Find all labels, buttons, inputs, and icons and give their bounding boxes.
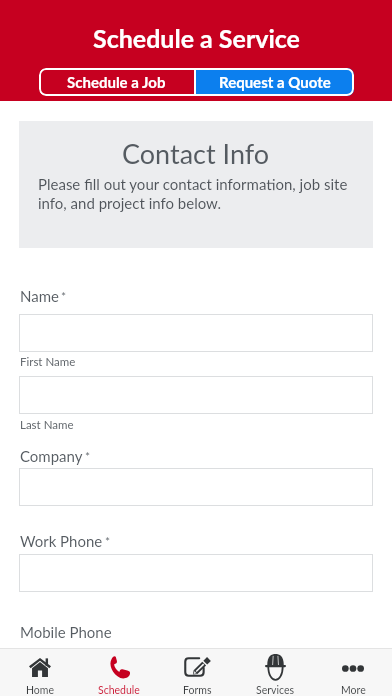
button[interactable]: Schedule a Job <box>39 68 194 96</box>
staticText: * <box>85 449 91 463</box>
button[interactable]: Forms <box>158 649 236 696</box>
button[interactable] <box>19 468 373 506</box>
staticText: Last Name <box>20 418 74 432</box>
other: Services <box>265 654 286 679</box>
staticText: Schedule a Service <box>93 23 300 53</box>
button[interactable]: Home <box>0 649 79 696</box>
staticText: * <box>105 534 111 548</box>
staticText: Forms <box>183 684 212 696</box>
button[interactable] <box>19 554 373 592</box>
button[interactable] <box>19 376 373 414</box>
staticText: Please fill out your contact information… <box>38 175 358 212</box>
staticText: First Name <box>20 355 76 369</box>
other: Schedule <box>108 657 130 678</box>
staticText: Work Phone <box>20 532 103 550</box>
button[interactable]: Schedule <box>79 649 158 696</box>
other: More <box>342 658 364 679</box>
staticText: Mobile Phone <box>20 623 112 641</box>
staticText: Name <box>20 287 59 305</box>
staticText: Company <box>20 447 83 465</box>
button[interactable]: More <box>314 649 392 696</box>
other: Forms <box>184 657 210 677</box>
button[interactable] <box>19 314 373 352</box>
staticText: Services <box>256 684 294 696</box>
button[interactable]: Services <box>236 649 314 696</box>
staticText: * <box>61 289 67 303</box>
staticText: Contact Info <box>122 137 270 169</box>
staticText: Home <box>26 684 54 696</box>
staticText: Schedule a Job <box>67 73 166 91</box>
staticText: Schedule <box>98 684 140 696</box>
other: Home <box>29 658 51 677</box>
staticText: Request a Quote <box>219 73 331 91</box>
staticText: More <box>341 684 366 696</box>
button[interactable]: Request a Quote <box>196 68 354 96</box>
